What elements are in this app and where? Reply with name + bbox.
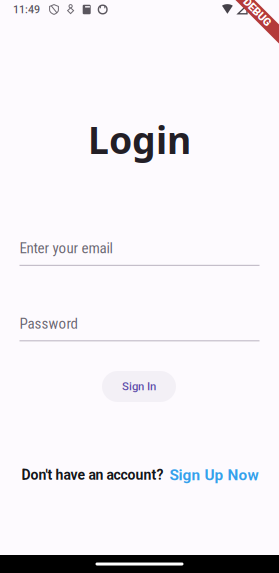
staticText: Enter your email <box>19 239 112 257</box>
staticText: Password <box>19 315 77 332</box>
staticText: Don't have an account? <box>21 467 163 483</box>
staticText: Sign Up Now <box>169 466 258 484</box>
button[interactable]: Sign Up Now <box>169 466 258 484</box>
staticText: Login <box>88 115 191 164</box>
staticText: 11:49 <box>13 3 40 16</box>
button[interactable]: Sign In <box>102 371 176 402</box>
staticText: DEBUG <box>240 6 274 18</box>
staticText: Sign In <box>122 380 156 393</box>
